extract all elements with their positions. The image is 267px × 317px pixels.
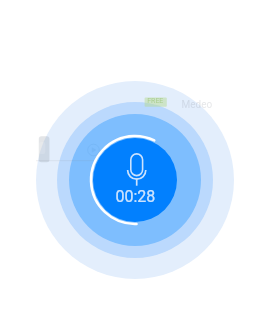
button[interactable]: Stop recording	[0, 0, 267, 317]
